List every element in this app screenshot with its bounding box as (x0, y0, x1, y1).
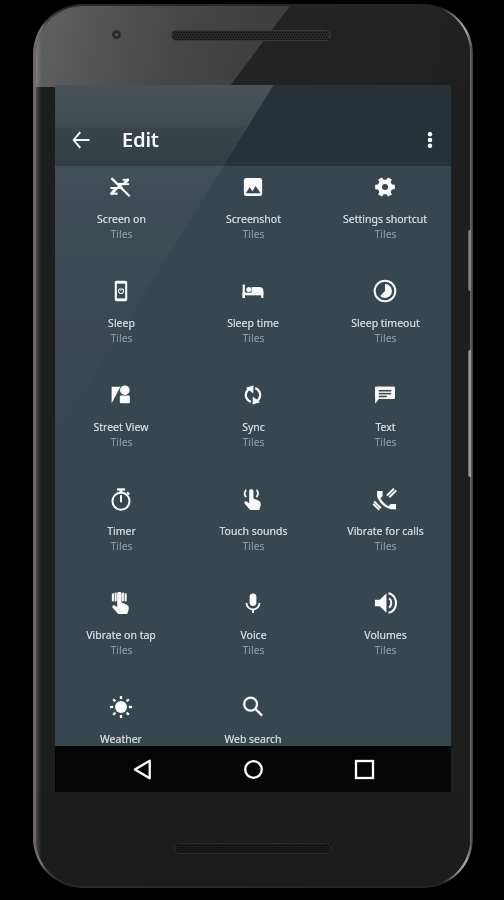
staticText: Tiles (374, 643, 397, 657)
button[interactable]: Recents (340, 746, 388, 792)
staticText: Sync (242, 420, 265, 434)
button[interactable]: Sync (187, 374, 319, 478)
button[interactable]: Weather (55, 686, 187, 790)
staticText: Tiles (242, 331, 265, 345)
staticText: Street View (93, 420, 149, 434)
button[interactable]: Touch sounds (187, 478, 319, 582)
staticText: Tiles (110, 435, 133, 449)
button[interactable]: Sleep (55, 270, 187, 374)
staticText: Web search (224, 732, 282, 746)
staticText: Tiles (374, 435, 397, 449)
button[interactable]: Screenshot (187, 166, 319, 270)
staticText: Vibrate on tap (86, 628, 156, 642)
button[interactable]: Text (319, 374, 451, 478)
button[interactable]: Street View (55, 374, 187, 478)
staticText: Text (375, 420, 396, 434)
staticText: Sleep (108, 316, 135, 330)
staticText: Sleep time (227, 316, 279, 330)
staticText: Screenshot (226, 212, 281, 226)
button[interactable]: Timer (55, 478, 187, 582)
staticText: Tiles (242, 435, 265, 449)
button[interactable]: Back (57, 116, 105, 164)
staticText: Tiles (110, 331, 133, 345)
button[interactable]: Sleep time (187, 270, 319, 374)
staticText: Tiles (110, 227, 133, 241)
button[interactable]: Settings shortcut (319, 166, 451, 270)
button[interactable]: Vibrate on tap (55, 582, 187, 686)
button[interactable]: Screen on (55, 166, 187, 270)
staticText: Tiles (242, 539, 265, 553)
staticText: Tiles (242, 643, 265, 657)
button[interactable]: Volumes (319, 582, 451, 686)
button[interactable]: Voice (187, 582, 319, 686)
staticText: Settings shortcut (343, 212, 427, 226)
staticText: Tiles (242, 227, 265, 241)
staticText: Tiles (242, 747, 265, 761)
button[interactable] (319, 686, 451, 790)
button[interactable]: Back (118, 746, 166, 792)
staticText: Weather (100, 732, 142, 746)
staticText: Tiles (374, 539, 397, 553)
button[interactable]: Sleep timeout (319, 270, 451, 374)
button[interactable]: More options (406, 116, 454, 164)
staticText: Sleep timeout (351, 316, 420, 330)
staticText: Screen on (97, 212, 146, 226)
button[interactable]: Home (229, 746, 277, 792)
staticText: Vibrate for calls (347, 524, 424, 538)
button[interactable]: Web search (187, 686, 319, 790)
staticText: Tiles (110, 643, 133, 657)
button[interactable]: Vibrate for calls (319, 478, 451, 582)
staticText: Tiles (374, 331, 397, 345)
staticText: Volumes (364, 628, 407, 642)
staticText: Touch sounds (219, 524, 288, 538)
staticText: Edit (122, 126, 159, 153)
staticText: Tiles (374, 227, 397, 241)
staticText: Tiles (110, 539, 133, 553)
staticText: Voice (240, 628, 267, 642)
staticText: Timer (107, 524, 136, 538)
